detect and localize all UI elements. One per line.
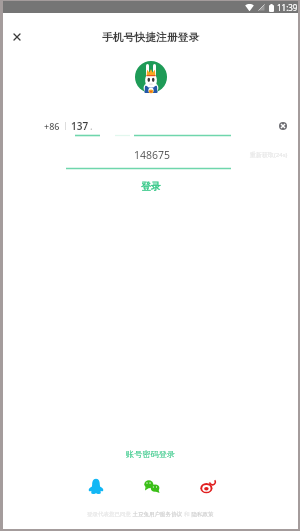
staticText: 137 [71,119,89,133]
staticText: 登录 [141,180,161,193]
button[interactable]: Clear [279,122,287,130]
staticText: 和 [184,511,190,518]
staticText: 11:39 [277,2,298,13]
button[interactable]: Weibo login [200,478,216,494]
button[interactable]: Close [6,26,28,48]
button[interactable]: 土豆兔用户服务协议 [131,510,184,518]
button[interactable]: 重新获取(24s) [250,151,288,159]
staticText: +86 [44,120,60,132]
button[interactable]: 登录 [129,177,173,196]
staticText: 登录代表您已同意 [87,511,131,518]
button[interactable]: 账号密码登录 [116,447,186,461]
staticText: 148675 [134,148,171,162]
staticText: 手机号快捷注册登录 [102,31,200,45]
button[interactable]: QQ login [88,478,104,494]
button[interactable]: 隐私政策 [190,510,214,518]
staticText: 账号密码登录 [126,449,176,459]
button[interactable]: WeChat login [144,478,160,494]
staticText: . [90,119,93,133]
